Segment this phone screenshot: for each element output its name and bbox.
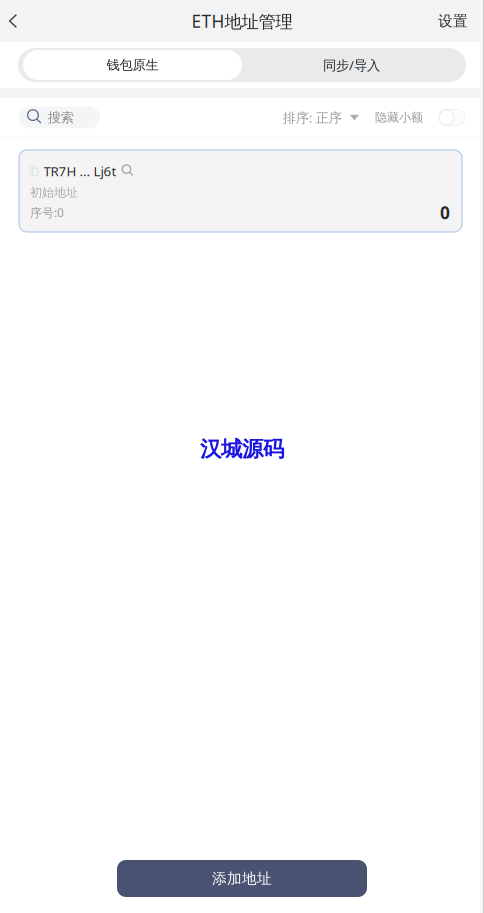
button[interactable]: 添加地址 [117,860,367,897]
staticText: 钱包原生 [106,57,158,73]
staticText: 初始地址 [30,185,78,200]
button[interactable]: 排序: 正序 [283,109,359,126]
staticText: 搜索 [48,109,74,126]
button[interactable]: 返回 [0,0,26,42]
staticText: 排序: 正序 [283,109,342,126]
button[interactable]: 设置 [422,0,484,42]
staticText: 隐藏小额 [375,110,423,125]
staticText: 汉城源码 [200,436,284,462]
staticText: 添加地址 [212,869,272,887]
button[interactable]: 同步/导入 [242,50,461,80]
button[interactable]: TR7H … Lj6t [0,138,484,232]
button[interactable]: 钱包原生 [23,50,242,80]
staticText: 设置 [438,12,468,30]
staticText: 同步/导入 [323,56,380,74]
button[interactable]: 搜索 [19,106,100,128]
staticText: ETH地址管理 [191,9,292,32]
button[interactable]: 隐藏小额 [439,109,465,125]
staticText: 0 [440,201,450,224]
staticText: 序号:0 [30,204,64,220]
staticText: TR7H … Lj6t [44,162,117,180]
